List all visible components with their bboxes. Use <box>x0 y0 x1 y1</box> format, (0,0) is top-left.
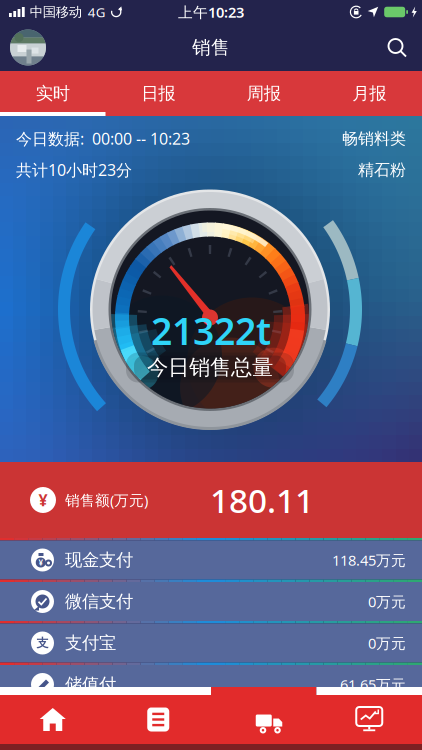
staticText: 61.65万元 <box>340 675 406 694</box>
button[interactable]: 首页 <box>0 695 105 744</box>
staticText: 日报 <box>141 83 175 104</box>
staticText: 支付宝 <box>65 632 116 654</box>
staticText: 180.11 <box>210 478 314 522</box>
staticText: 中国移动 <box>30 4 82 20</box>
button[interactable]: 实时 <box>0 71 105 116</box>
staticText: 月报 <box>352 83 386 104</box>
staticText: 销售 <box>192 36 230 59</box>
button[interactable]: 统计 <box>316 695 422 744</box>
staticText: 实时 <box>36 83 70 104</box>
staticText: 周报 <box>247 83 281 104</box>
staticText: 支 <box>36 636 48 650</box>
staticText: 现金支付 <box>65 549 133 571</box>
button[interactable]: 日报 <box>105 71 211 116</box>
staticText: 4G <box>88 3 106 21</box>
button[interactable]: 微信支付 <box>0 579 422 621</box>
button[interactable]: ¥ <box>0 538 422 579</box>
staticText: ¥ <box>38 489 47 511</box>
staticText: 微信支付 <box>65 591 133 612</box>
button[interactable]: 储值付 <box>0 662 422 704</box>
button[interactable]: 个人中心 <box>10 29 46 65</box>
button[interactable]: 报表 <box>105 695 211 744</box>
staticText: 畅销料类 <box>342 129 406 148</box>
button[interactable]: 月报 <box>316 71 422 116</box>
staticText: 储值付 <box>65 674 116 695</box>
staticText: 0万元 <box>368 592 406 611</box>
button[interactable]: 周报 <box>211 71 316 116</box>
staticText: 今日销售总量 <box>147 354 273 381</box>
staticText: 精石粉 <box>358 160 406 180</box>
staticText: 上午10:23 <box>178 2 244 22</box>
button[interactable]: 搜索 <box>387 37 407 57</box>
staticText: 118.45万元 <box>332 550 406 570</box>
staticText: 共计10小时23分 <box>16 159 132 180</box>
staticText: ¥ <box>38 557 43 568</box>
button[interactable]: 销售 <box>211 695 316 744</box>
staticText: 21322t <box>151 306 271 355</box>
staticText: 0万元 <box>368 633 406 653</box>
staticText: 销售额(万元) <box>65 490 148 510</box>
button[interactable]: 支 <box>0 621 422 662</box>
staticText: 今日数据: 00:00 -- 10:23 <box>16 128 190 149</box>
